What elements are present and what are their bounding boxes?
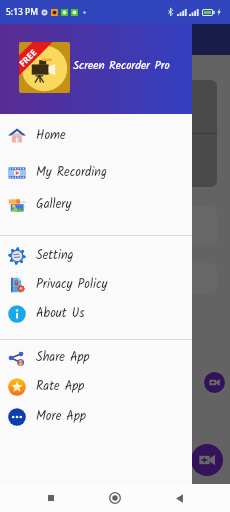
staticText: My Recording xyxy=(36,163,107,183)
button[interactable]: More App xyxy=(0,402,192,432)
staticText: Screen Recorder Pro xyxy=(73,57,170,75)
button[interactable]: Setting xyxy=(0,241,192,271)
staticText: Rate App xyxy=(36,377,85,397)
button[interactable]: My Recording xyxy=(0,158,192,188)
button[interactable]: About Us xyxy=(0,299,192,329)
staticText: Home xyxy=(36,126,66,146)
staticText: Setting xyxy=(36,246,74,266)
staticText: 5:13 PM xyxy=(6,6,39,18)
staticText: FREE xyxy=(19,47,39,69)
button[interactable]: Start recording xyxy=(191,444,223,476)
button[interactable]: Record video xyxy=(204,372,225,393)
staticText: About Us xyxy=(36,304,85,324)
button[interactable]: Home xyxy=(0,121,192,151)
staticText: Privacy Policy xyxy=(36,275,108,295)
button[interactable]: Rate App xyxy=(0,372,192,402)
button[interactable]: Privacy Policy xyxy=(0,270,192,300)
button[interactable]: Recent apps xyxy=(38,485,64,511)
button[interactable]: Gallery xyxy=(0,190,192,220)
button[interactable]: Home xyxy=(102,485,128,511)
button[interactable]: Share App xyxy=(0,343,192,373)
staticText: Share App xyxy=(36,348,90,368)
button[interactable]: Back xyxy=(166,485,192,511)
staticText: More App xyxy=(36,407,86,427)
staticText: Gallery xyxy=(36,195,72,215)
